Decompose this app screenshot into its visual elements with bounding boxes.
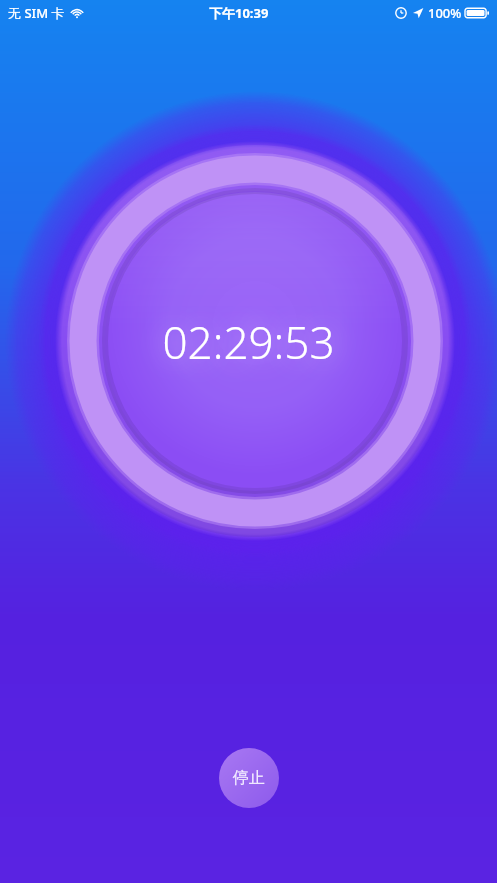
staticText: 无 SIM 卡 bbox=[8, 4, 65, 22]
button[interactable]: 停止 bbox=[219, 748, 279, 808]
staticText: 停止 bbox=[233, 768, 265, 788]
staticText: 100% bbox=[428, 4, 462, 22]
staticText: 02:29:53 bbox=[162, 312, 335, 372]
staticText: 下午10:39 bbox=[209, 4, 269, 22]
